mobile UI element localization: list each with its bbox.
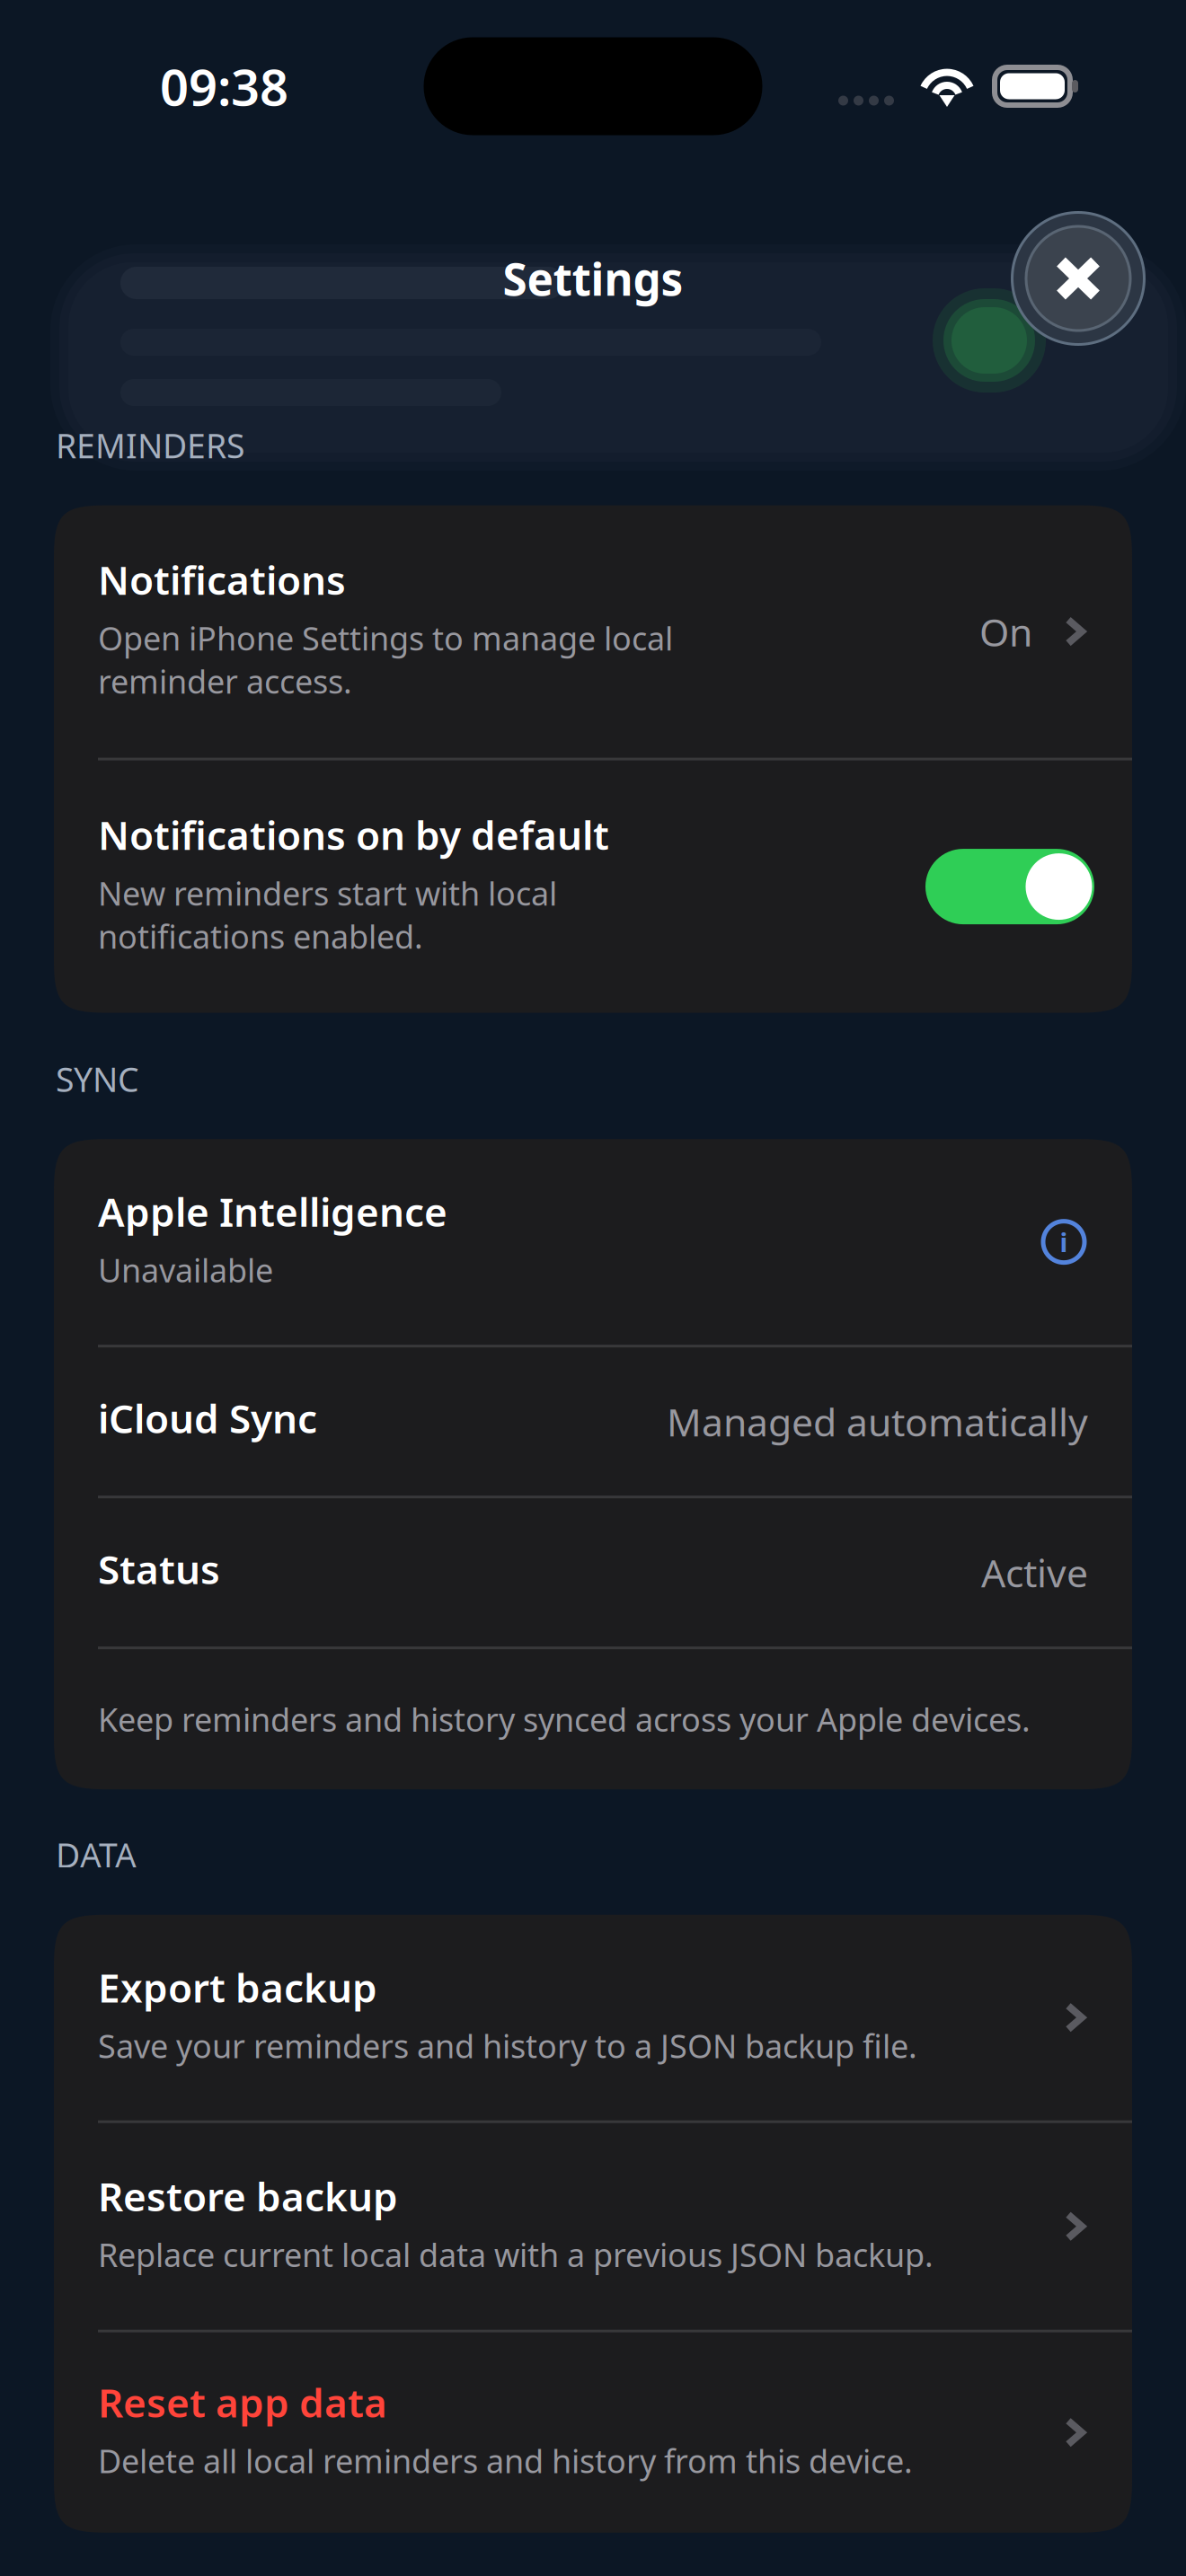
staticText: Managed automatically <box>667 1396 1088 1447</box>
staticText: Save your reminders and history to a JSO… <box>98 2024 917 2067</box>
staticText: Reset app data <box>98 2376 387 2428</box>
button[interactable]: Apple Intelligence <box>54 1139 1132 1345</box>
staticText: SYNC <box>56 1057 139 1101</box>
staticText: Status <box>98 1543 220 1595</box>
button[interactable]: Notifications <box>54 505 1132 758</box>
button[interactable]: Status <box>54 1498 1132 1647</box>
staticText: Settings <box>503 249 683 308</box>
staticText: Notifications on by default <box>98 808 609 861</box>
staticText: iCloud Sync <box>98 1392 317 1444</box>
button[interactable]: Restore backup <box>54 2123 1132 2330</box>
staticText: DATA <box>56 1832 137 1877</box>
staticText: Keep reminders and history synced across… <box>98 1698 1031 1741</box>
staticText: 09:38 <box>160 53 288 120</box>
staticText: Apple Intelligence <box>98 1185 447 1238</box>
staticText: Active <box>981 1547 1088 1598</box>
staticText: Notifications <box>98 553 346 606</box>
staticText: Replace current local data with a previo… <box>98 2233 934 2276</box>
staticText: Delete all local reminders and history f… <box>98 2439 913 2482</box>
button[interactable]: Notifications on by default <box>54 760 1132 1013</box>
staticText: Restore backup <box>98 2170 398 2222</box>
button[interactable]: Export backup <box>54 1915 1132 2120</box>
staticText: New reminders start with local notificat… <box>98 872 557 958</box>
staticText: On <box>979 606 1032 657</box>
button[interactable]: Reset app data <box>54 2332 1132 2533</box>
button[interactable]: Close <box>1010 210 1146 347</box>
staticText: Open iPhone Settings to manage local rem… <box>98 617 673 702</box>
button[interactable]: iCloud Sync <box>54 1347 1132 1496</box>
staticText: Export backup <box>98 1961 377 2013</box>
staticText: i <box>1060 1224 1068 1259</box>
staticText: REMINDERS <box>56 423 244 468</box>
staticText: Unavailable <box>98 1248 273 1291</box>
